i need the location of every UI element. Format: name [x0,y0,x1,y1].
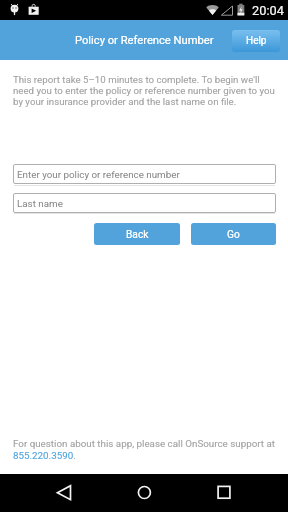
staticText: Help [246,35,267,47]
button[interactable]: Help [232,30,280,52]
staticText: Go [227,229,240,241]
button[interactable]: Back [44,474,84,512]
button[interactable]: Home [124,474,164,512]
staticText: Enter your policy or reference number [17,169,180,180]
button[interactable]: Enter your policy or reference number [13,164,276,184]
button[interactable]: Go [191,223,276,245]
staticText: Last name [17,198,63,209]
button[interactable]: Last name [13,193,276,213]
staticText: This report take 5–10 minutes to complet… [13,74,281,107]
staticText: 20:04 [252,3,284,18]
button[interactable]: Recent apps [204,474,244,512]
staticText: Policy or Reference Number [75,34,214,47]
staticText: Back [126,229,149,241]
staticText: For question about this app, please call… [13,438,277,462]
button[interactable]: Back [94,223,180,245]
